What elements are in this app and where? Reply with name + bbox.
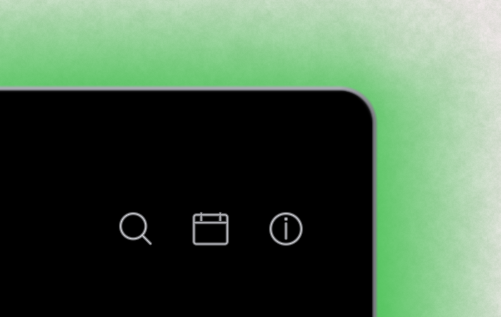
- button[interactable]: Info: [262, 205, 310, 253]
- button[interactable]: Search: [110, 203, 158, 251]
- button[interactable]: Calendar: [187, 205, 235, 253]
